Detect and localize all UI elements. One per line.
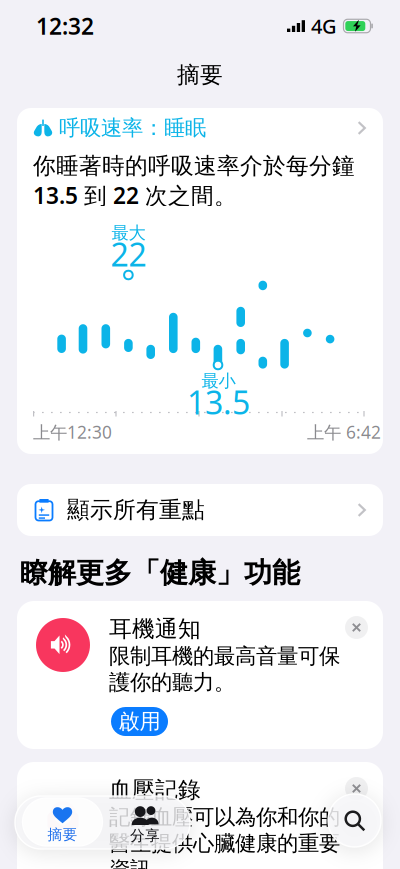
staticText: 13.5 <box>187 381 250 423</box>
button[interactable]: 顯示所有重點 <box>17 484 383 536</box>
staticText: 最小 <box>202 370 236 392</box>
button[interactable]: 呼吸速率：睡眠 <box>17 108 383 454</box>
staticText: 上午 6:42 <box>307 420 381 443</box>
staticText: 血壓記錄 <box>109 776 201 804</box>
staticText: 4G <box>311 13 337 39</box>
button[interactable]: 摘要 <box>22 798 102 846</box>
staticText: 你睡著時的呼吸速率介於每分鐘 13.5 到 22 次之間。 <box>33 150 355 210</box>
staticText: 啟用 <box>118 708 160 735</box>
button[interactable]: 搜尋 <box>328 794 381 847</box>
staticText: 最大 <box>111 222 145 244</box>
staticText: 限制耳機的最高音量可保護你的聽力。 <box>109 643 340 695</box>
staticText: 記錄血壓可以為你和你的醫生提供心臟健康的重要資訊。 <box>109 804 340 869</box>
staticText: 耳機通知 <box>109 615 201 643</box>
staticText: 顯示所有重點 <box>67 496 205 524</box>
staticText: 摘要 <box>47 825 77 843</box>
staticText: 瞭解更多「健康」功能 <box>20 556 300 590</box>
button[interactable]: 分享 <box>105 798 185 846</box>
button[interactable]: 關閉 <box>345 616 368 639</box>
staticText: 22 <box>110 233 146 275</box>
staticText: 摘要 <box>177 61 223 89</box>
button[interactable]: 啟用 <box>111 707 168 736</box>
staticText: 分享 <box>130 826 160 844</box>
staticText: 呼吸速率：睡眠 <box>59 115 206 141</box>
button[interactable]: 關閉 <box>345 777 368 800</box>
staticText: 上午12:30 <box>33 420 112 443</box>
staticText: 12:32 <box>36 11 94 41</box>
